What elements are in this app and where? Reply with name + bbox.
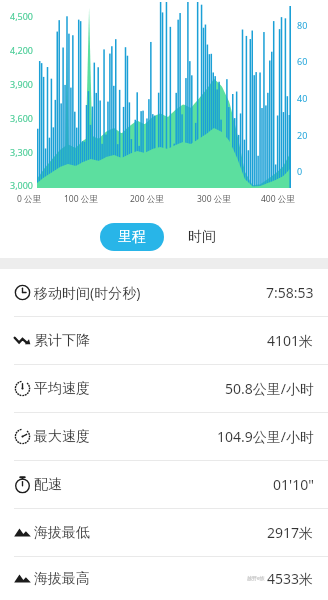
staticText: 里程 (118, 228, 146, 246)
staticText: 4533米 (267, 569, 314, 588)
staticText: 20 (297, 129, 308, 141)
staticText: 40 (297, 92, 308, 104)
staticText: 累计下降 (34, 332, 90, 350)
staticText: 4,500 (10, 10, 34, 22)
staticText: 01'10" (273, 475, 314, 494)
staticText: 60 (297, 55, 308, 67)
staticText: 80 (297, 19, 308, 31)
staticText: 3,000 (10, 179, 34, 191)
other: Moving time (14, 284, 31, 301)
other: Average speed (14, 380, 31, 397)
other: Elevation (14, 570, 31, 587)
staticText: 3,300 (10, 146, 34, 158)
staticText: 0 (297, 165, 303, 177)
staticText: 100 公里 (64, 193, 98, 205)
button[interactable]: Elevation (0, 557, 328, 600)
button[interactable]: Elevation (0, 509, 328, 556)
other: Max speed (14, 428, 31, 445)
other: Elevation (14, 524, 31, 541)
staticText: 平均速度 (34, 380, 90, 398)
staticText: 400 公里 (261, 193, 295, 205)
staticText: 时间 (188, 228, 216, 246)
staticText: 移动时间(时分秒) (34, 283, 141, 302)
staticText: 7:58:53 (266, 283, 314, 302)
staticText: 300 公里 (197, 193, 231, 205)
staticText: 3,600 (10, 112, 34, 124)
button[interactable]: 时间 (176, 223, 228, 251)
button[interactable]: Average speed (0, 365, 328, 412)
staticText: 2917米 (267, 523, 314, 542)
button[interactable]: 里程 (100, 223, 164, 251)
button[interactable]: Pace (0, 461, 328, 508)
staticText: 配速 (34, 476, 62, 494)
other: Total descent (14, 332, 31, 349)
button[interactable]: Moving time (0, 269, 328, 316)
staticText: 104.9公里/小时 (217, 427, 314, 446)
staticText: 4,200 (10, 44, 34, 56)
staticText: 0 公里 (17, 193, 42, 205)
staticText: 海拔最低 (34, 524, 90, 542)
button[interactable]: Max speed (0, 413, 328, 460)
staticText: 最大速度 (34, 428, 90, 446)
other: Pace (14, 476, 31, 493)
staticText: 4101米 (267, 331, 314, 350)
staticText: 3,900 (10, 78, 34, 90)
staticText: 海拔最高 (34, 570, 90, 588)
staticText: 越野e族 (247, 575, 265, 582)
staticText: 50.8公里/小时 (225, 379, 314, 398)
staticText: 200 公里 (130, 193, 164, 205)
button[interactable]: Total descent (0, 317, 328, 364)
